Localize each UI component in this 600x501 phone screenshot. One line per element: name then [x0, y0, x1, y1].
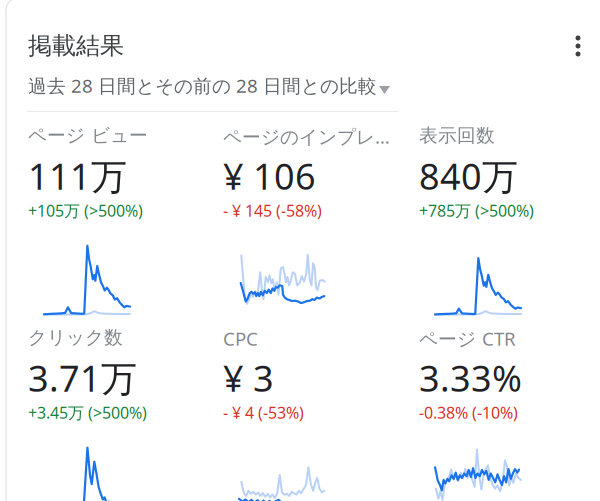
staticText: ページ ビュー — [28, 124, 148, 147]
staticText: クリック数 — [28, 326, 123, 349]
staticText: ページのインプレ… — [223, 124, 390, 149]
staticText: 過去 28 日間とその前の 28 日間との比較 — [28, 73, 377, 98]
staticText: - ¥ 145 (-58%) — [223, 200, 322, 221]
staticText: - ¥ 4 (-53%) — [223, 402, 304, 423]
staticText: ページ CTR — [419, 326, 516, 351]
button[interactable]: CPC — [223, 326, 403, 501]
staticText: +785万 (>500%) — [419, 200, 534, 221]
button[interactable]: ページ CTR — [419, 326, 599, 501]
staticText: 840万 — [419, 152, 518, 200]
staticText: +3.45万 (>500%) — [28, 402, 147, 423]
button[interactable]: クリック数 — [28, 326, 208, 501]
button[interactable]: ページのインプレ… — [223, 124, 403, 314]
staticText: ¥ 106 — [223, 152, 316, 200]
staticText: ¥ 3 — [223, 354, 274, 402]
staticText: 表示回数 — [419, 124, 495, 147]
staticText: CPC — [223, 326, 258, 351]
button[interactable]: Change date range — [377, 78, 405, 102]
staticText: 111万 — [28, 152, 127, 200]
staticText: 掲載結果 — [28, 31, 124, 60]
staticText: -0.38% (-10%) — [419, 402, 518, 423]
button[interactable]: More options — [558, 24, 598, 68]
button[interactable]: ページ ビュー — [28, 124, 208, 314]
staticText: +105万 (>500%) — [28, 200, 143, 221]
staticText: 3.71万 — [28, 354, 137, 402]
button[interactable]: 表示回数 — [419, 124, 599, 314]
staticText: 3.33% — [419, 354, 522, 402]
